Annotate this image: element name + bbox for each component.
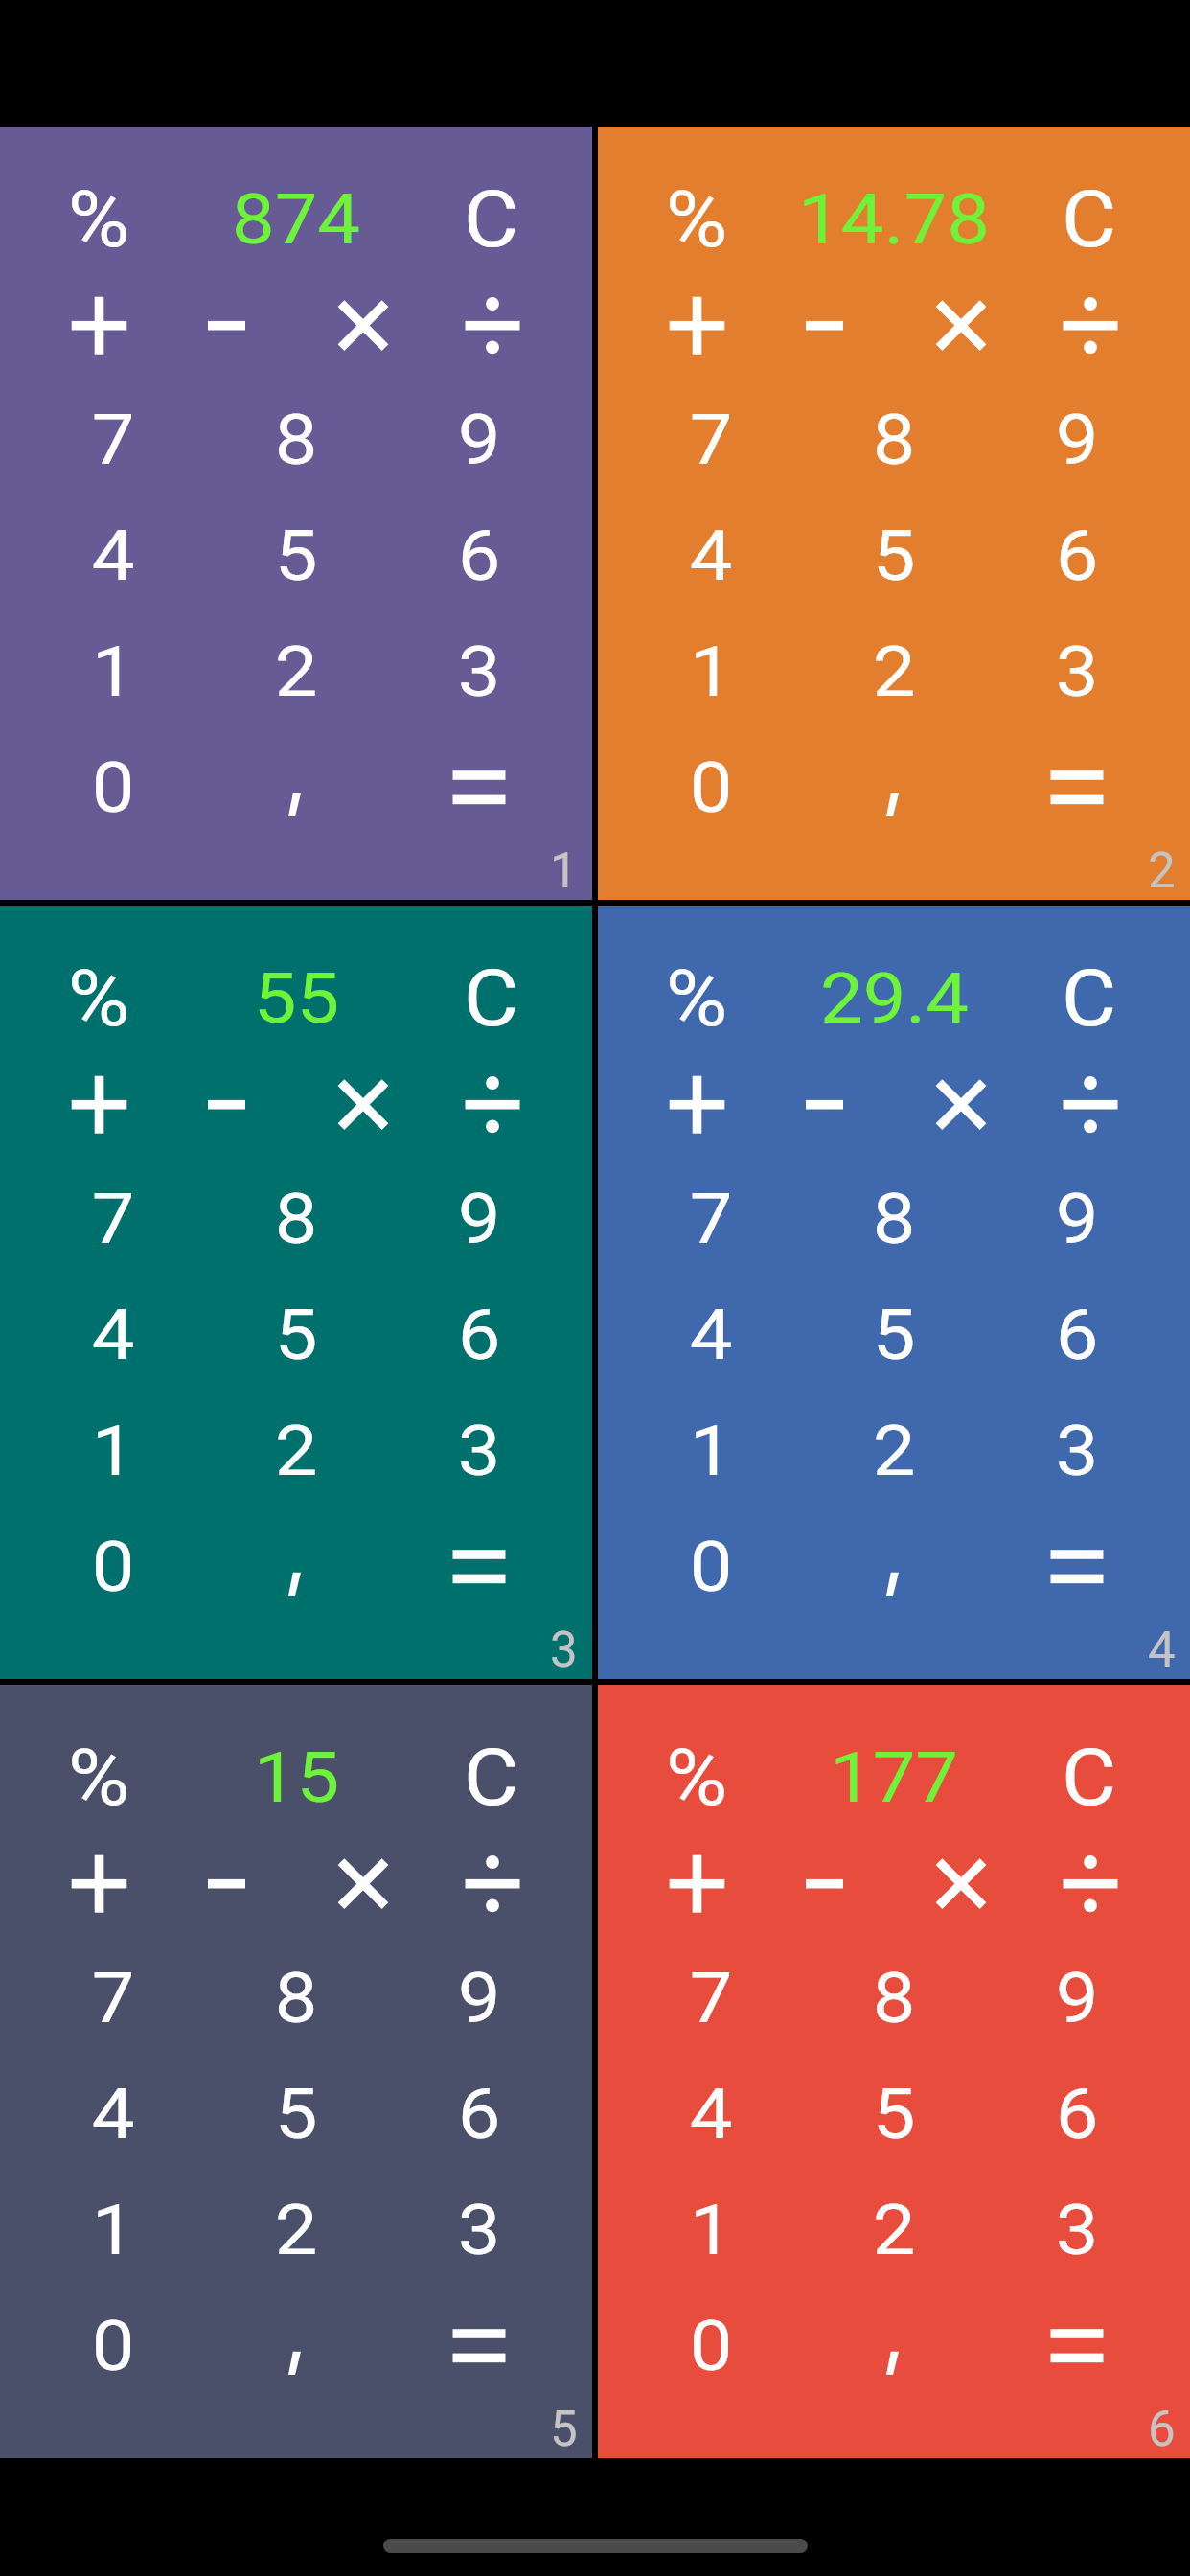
button[interactable]: Subtract bbox=[764, 1825, 894, 1940]
button[interactable]: 55 bbox=[162, 952, 430, 1046]
button[interactable]: Subtract bbox=[764, 1046, 894, 1161]
button[interactable]: 1 bbox=[620, 613, 802, 729]
button[interactable]: Clear bbox=[1028, 1731, 1155, 1825]
button[interactable]: 5 bbox=[204, 1276, 387, 1392]
button[interactable]: 7 bbox=[620, 381, 802, 497]
button[interactable]: Add bbox=[35, 1046, 166, 1161]
button[interactable]: 8 bbox=[802, 381, 985, 497]
button[interactable]: Clear bbox=[430, 172, 557, 266]
button[interactable]: 6 bbox=[387, 1276, 570, 1392]
button[interactable]: Multiply bbox=[296, 1825, 426, 1940]
button[interactable]: Decimal separator bbox=[802, 1508, 985, 1624]
button[interactable]: 0 bbox=[22, 1508, 204, 1624]
button[interactable]: 6 bbox=[985, 2056, 1168, 2172]
button[interactable]: 6 bbox=[985, 1276, 1168, 1392]
button[interactable]: 14.78 bbox=[760, 172, 1028, 266]
button[interactable]: Decimal separator bbox=[802, 2288, 985, 2403]
button[interactable]: Percent bbox=[633, 1731, 760, 1825]
button[interactable]: 0 bbox=[620, 2288, 802, 2403]
button[interactable]: Add bbox=[35, 1825, 166, 1940]
button[interactable]: Clear bbox=[430, 1731, 557, 1825]
button[interactable]: 4 bbox=[22, 2056, 204, 2172]
button[interactable]: 4 bbox=[620, 497, 802, 613]
button[interactable]: 0 bbox=[22, 2288, 204, 2403]
button[interactable]: Divide bbox=[1024, 1825, 1155, 1940]
button[interactable]: 9 bbox=[387, 381, 570, 497]
button[interactable]: 0 bbox=[620, 729, 802, 845]
button[interactable]: Decimal separator bbox=[204, 729, 387, 845]
button[interactable]: Subtract bbox=[166, 1825, 296, 1940]
button[interactable]: 9 bbox=[985, 1161, 1168, 1276]
button[interactable]: 9 bbox=[985, 381, 1168, 497]
button[interactable]: 29.4 bbox=[760, 952, 1028, 1046]
button[interactable]: Equals bbox=[985, 1508, 1168, 1624]
button[interactable]: Divide bbox=[426, 1825, 557, 1940]
button[interactable]: 8 bbox=[204, 1940, 387, 2056]
button[interactable]: 7 bbox=[620, 1940, 802, 2056]
button[interactable]: 2 bbox=[802, 613, 985, 729]
button[interactable]: Clear bbox=[1028, 172, 1155, 266]
button[interactable]: 7 bbox=[22, 381, 204, 497]
button[interactable]: Subtract bbox=[764, 266, 894, 381]
button[interactable]: Percent bbox=[35, 952, 162, 1046]
button[interactable]: 3 bbox=[985, 2172, 1168, 2288]
button[interactable]: Subtract bbox=[166, 1046, 296, 1161]
button[interactable]: Percent bbox=[35, 172, 162, 266]
button[interactable]: Multiply bbox=[894, 1825, 1024, 1940]
button[interactable]: 3 bbox=[387, 1392, 570, 1508]
button[interactable]: 1 bbox=[22, 613, 204, 729]
button[interactable]: 6 bbox=[985, 497, 1168, 613]
button[interactable]: 3 bbox=[985, 1392, 1168, 1508]
button[interactable]: Decimal separator bbox=[204, 1508, 387, 1624]
button[interactable]: 4 bbox=[22, 497, 204, 613]
button[interactable]: 15 bbox=[162, 1731, 430, 1825]
button[interactable]: Percent bbox=[35, 1731, 162, 1825]
button[interactable]: 7 bbox=[620, 1161, 802, 1276]
button[interactable]: Divide bbox=[426, 1046, 557, 1161]
button[interactable]: Divide bbox=[426, 266, 557, 381]
button[interactable]: 1 bbox=[620, 2172, 802, 2288]
button[interactable]: Add bbox=[35, 266, 166, 381]
button[interactable]: Multiply bbox=[296, 1046, 426, 1161]
button[interactable]: 6 bbox=[387, 497, 570, 613]
button[interactable]: 7 bbox=[22, 1940, 204, 2056]
button[interactable]: 1 bbox=[22, 1392, 204, 1508]
button[interactable]: 5 bbox=[802, 2056, 985, 2172]
button[interactable]: 4 bbox=[620, 2056, 802, 2172]
button[interactable]: Percent bbox=[633, 952, 760, 1046]
button[interactable]: Equals bbox=[985, 2288, 1168, 2403]
button[interactable]: Multiply bbox=[894, 1046, 1024, 1161]
button[interactable]: 1 bbox=[22, 2172, 204, 2288]
button[interactable]: 177 bbox=[760, 1731, 1028, 1825]
button[interactable]: 1 bbox=[620, 1392, 802, 1508]
button[interactable]: 8 bbox=[802, 1940, 985, 2056]
button[interactable]: Clear bbox=[430, 952, 557, 1046]
button[interactable]: 3 bbox=[387, 2172, 570, 2288]
button[interactable]: 2 bbox=[802, 2172, 985, 2288]
button[interactable]: 9 bbox=[387, 1940, 570, 2056]
button[interactable]: 0 bbox=[22, 729, 204, 845]
button[interactable]: 0 bbox=[620, 1508, 802, 1624]
button[interactable]: 9 bbox=[387, 1161, 570, 1276]
button[interactable]: Divide bbox=[1024, 266, 1155, 381]
button[interactable]: 7 bbox=[22, 1161, 204, 1276]
button[interactable]: 5 bbox=[802, 1276, 985, 1392]
button[interactable]: 8 bbox=[204, 381, 387, 497]
button[interactable]: 5 bbox=[204, 497, 387, 613]
button[interactable]: 2 bbox=[802, 1392, 985, 1508]
button[interactable]: Decimal separator bbox=[802, 729, 985, 845]
button[interactable]: Equals bbox=[387, 1508, 570, 1624]
button[interactable]: 3 bbox=[985, 613, 1168, 729]
button[interactable]: Subtract bbox=[166, 266, 296, 381]
button[interactable]: 3 bbox=[387, 613, 570, 729]
button[interactable]: 5 bbox=[204, 2056, 387, 2172]
button[interactable]: 4 bbox=[22, 1276, 204, 1392]
button[interactable]: Clear bbox=[1028, 952, 1155, 1046]
button[interactable]: 5 bbox=[802, 497, 985, 613]
button[interactable]: Equals bbox=[387, 729, 570, 845]
button[interactable]: Add bbox=[633, 266, 764, 381]
button[interactable]: 4 bbox=[620, 1276, 802, 1392]
button[interactable]: 2 bbox=[204, 1392, 387, 1508]
button[interactable]: 8 bbox=[204, 1161, 387, 1276]
button[interactable]: Percent bbox=[633, 172, 760, 266]
